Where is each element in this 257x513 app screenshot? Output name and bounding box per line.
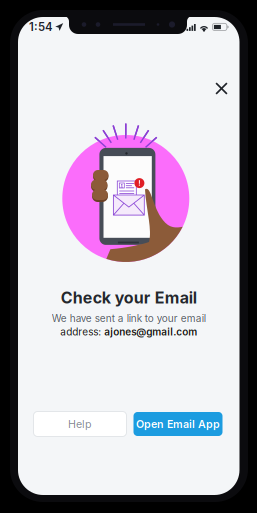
staticText: Check your Email <box>61 288 197 307</box>
staticText: Open Email App <box>136 417 220 430</box>
button[interactable]: Open Email App <box>133 412 222 436</box>
button[interactable]: Close <box>208 75 234 101</box>
staticText: 1:54 <box>29 20 53 34</box>
staticText: We have sent a link to your email <box>52 312 206 324</box>
staticText: Help <box>68 417 92 430</box>
button[interactable]: Help <box>33 411 126 436</box>
staticText: address: ajones@gmail.com <box>60 326 197 338</box>
